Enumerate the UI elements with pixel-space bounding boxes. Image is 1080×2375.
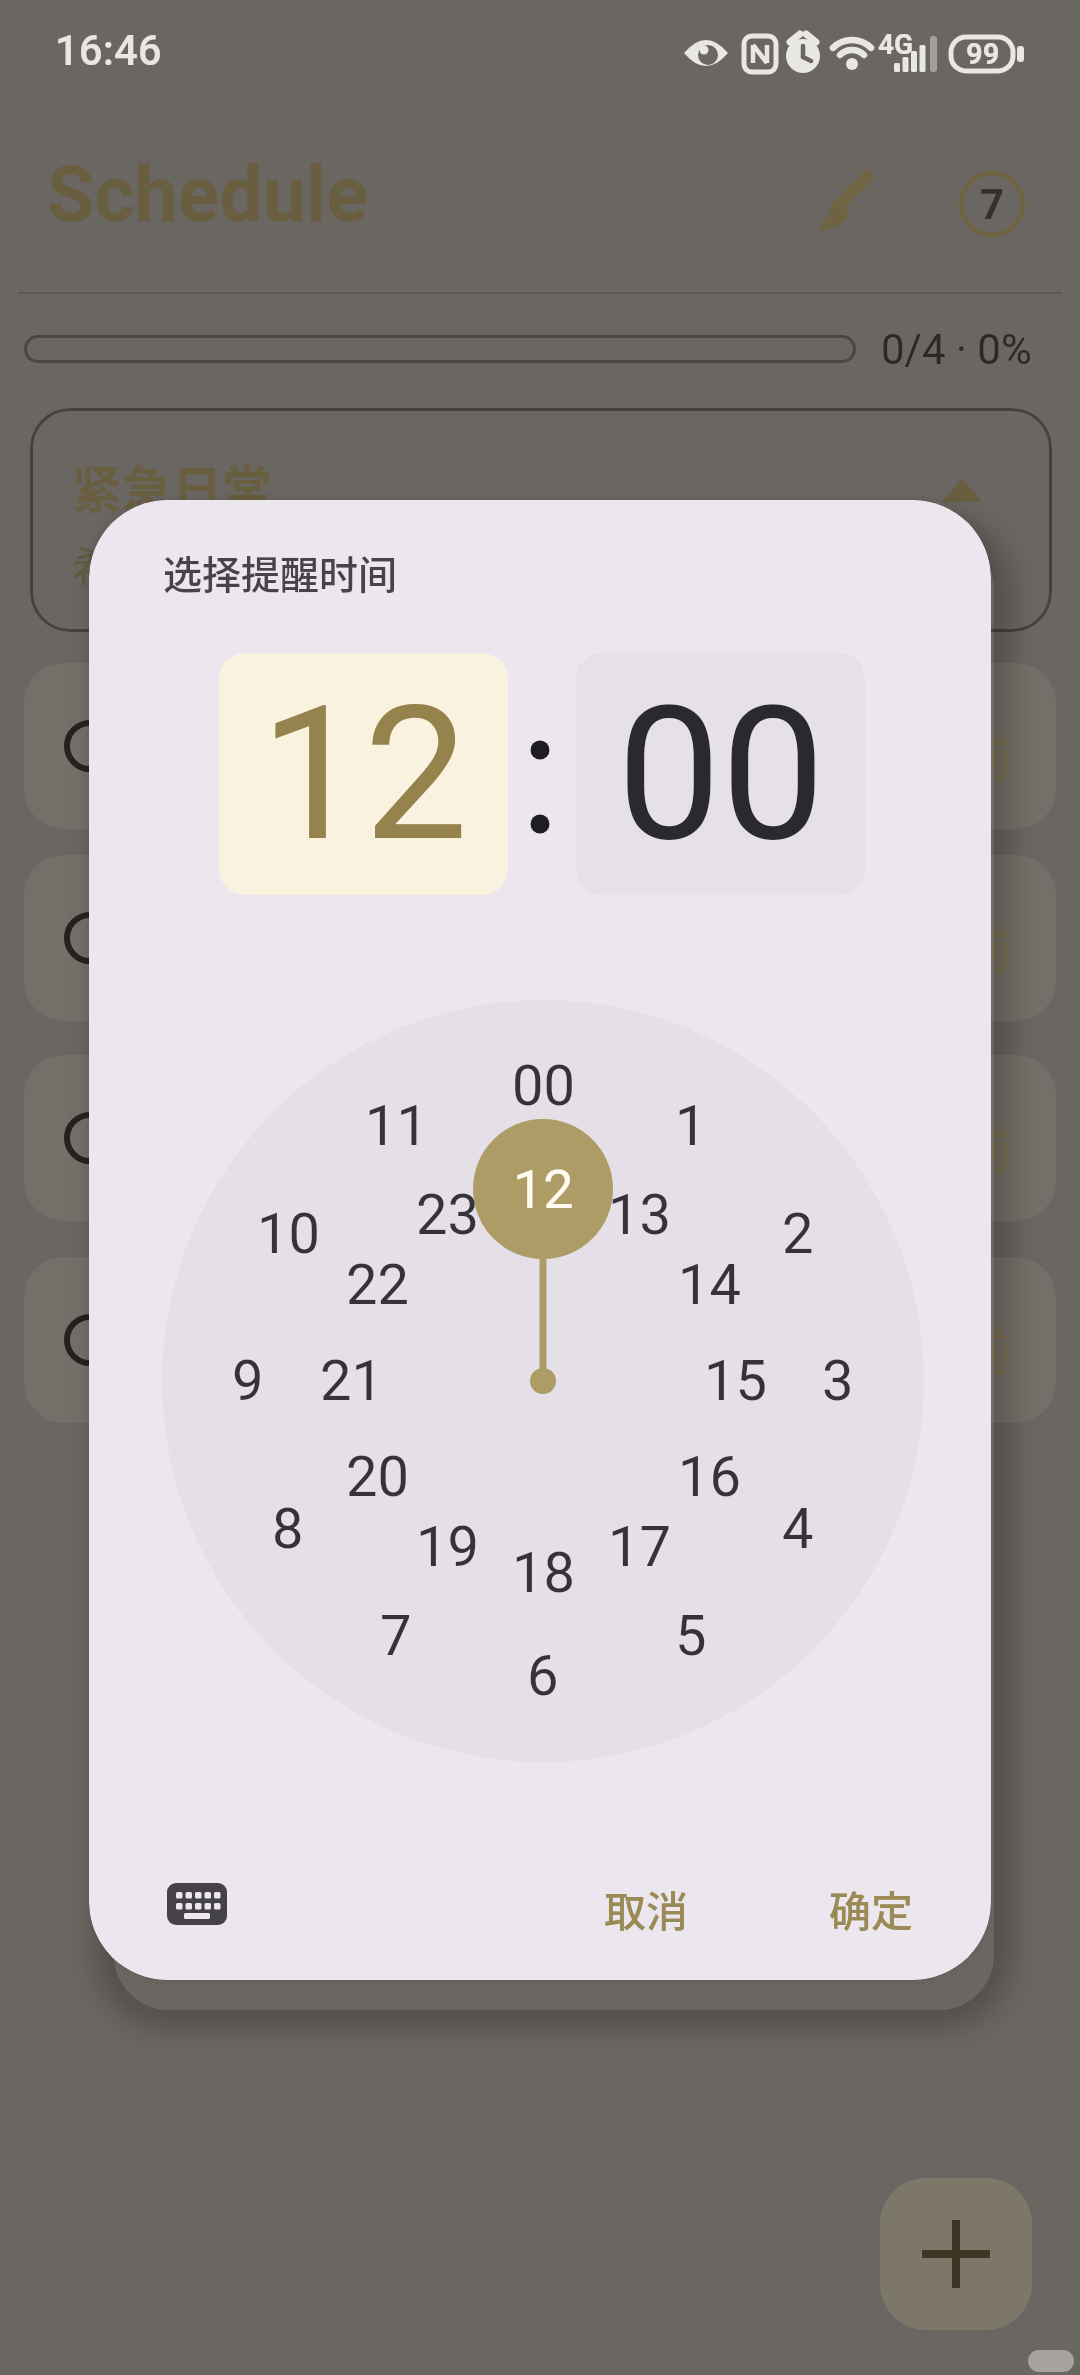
button[interactable]: 4 <box>753 1484 843 1574</box>
staticText: 希望早日实现 <box>72 533 336 597</box>
staticText: 确定 <box>829 1878 914 1939</box>
staticText: 17 <box>608 1514 671 1580</box>
staticText: 紧急日常 <box>72 450 272 522</box>
staticText: 5 <box>675 1603 707 1669</box>
button[interactable]: 取消 <box>576 1868 716 1948</box>
button[interactable]: 前 <box>24 663 1056 829</box>
staticText: 23 <box>416 1182 479 1248</box>
button[interactable]: 紧急日常 <box>30 408 1052 632</box>
button[interactable]: 18 <box>498 1528 588 1618</box>
button[interactable] <box>880 2178 1032 2330</box>
button[interactable]: 00 <box>498 1041 588 1131</box>
button[interactable]: 2 <box>753 1189 843 1279</box>
staticText: 10 <box>257 1201 320 1267</box>
staticText: 11 <box>365 1093 428 1159</box>
staticText: 18 <box>512 1540 575 1606</box>
staticText: 00 <box>512 1053 575 1119</box>
staticText: 12 <box>513 1158 574 1221</box>
button[interactable]: 23 <box>402 1170 492 1260</box>
button[interactable]: 12 <box>473 1119 613 1259</box>
button[interactable]: 13 <box>594 1170 684 1260</box>
button[interactable]: 20 <box>332 1432 422 1522</box>
staticText: 19 <box>416 1514 479 1580</box>
staticText: 4 <box>782 1496 814 1562</box>
button[interactable]: 前 <box>24 855 1056 1021</box>
staticText: 前 <box>962 1110 1012 1182</box>
button[interactable] <box>137 1852 257 1956</box>
staticText: 4G <box>878 28 914 61</box>
staticText: 前 <box>962 910 1012 982</box>
staticText: 6 <box>527 1643 559 1709</box>
button[interactable]: 15 <box>690 1336 780 1426</box>
button[interactable] <box>806 168 878 240</box>
staticText: 1 <box>675 1093 707 1159</box>
staticText: 22 <box>346 1252 409 1318</box>
staticText: 前 <box>962 1312 1012 1384</box>
staticText: 选择提醒时间 <box>163 544 398 600</box>
button[interactable]: 7 <box>958 170 1026 238</box>
staticText: 16:46 <box>55 26 162 75</box>
staticText: 99 <box>966 37 1000 71</box>
staticText: 9 <box>232 1348 264 1414</box>
staticText: 7 <box>980 180 1005 229</box>
staticText: 14 <box>678 1252 741 1318</box>
button[interactable]: 前 <box>24 1055 1056 1221</box>
staticText: 13 <box>608 1182 671 1248</box>
button[interactable]: 前 <box>24 1257 1056 1423</box>
staticText: 8 <box>272 1496 304 1562</box>
button[interactable]: 17 <box>594 1502 684 1592</box>
button[interactable]: 22 <box>332 1240 422 1330</box>
staticText: 21 <box>320 1348 383 1414</box>
staticText: 取消 <box>604 1878 689 1939</box>
button[interactable]: 00 <box>576 653 865 895</box>
staticText: 15 <box>704 1348 767 1414</box>
staticText: 12 <box>260 666 468 883</box>
button[interactable]: 7 <box>351 1591 441 1681</box>
button[interactable]: 1 <box>646 1081 736 1171</box>
button[interactable]: 19 <box>402 1502 492 1592</box>
button[interactable]: 确定 <box>801 1868 941 1948</box>
button[interactable]: 10 <box>243 1189 333 1279</box>
button[interactable]: 16 <box>664 1432 754 1522</box>
button[interactable]: 3 <box>793 1336 883 1426</box>
button[interactable]: 9 <box>203 1336 293 1426</box>
staticText: 前 <box>962 718 1012 790</box>
staticText: 7 <box>380 1603 412 1669</box>
button[interactable]: 12 <box>219 653 508 895</box>
staticText: 3 <box>822 1348 854 1414</box>
staticText: 0/4 · 0% <box>881 325 1032 374</box>
button[interactable]: 21 <box>306 1336 396 1426</box>
button[interactable]: 11 <box>351 1081 441 1171</box>
staticText: 00 <box>617 666 825 883</box>
button[interactable]: 14 <box>664 1240 754 1330</box>
button[interactable]: 6 <box>498 1631 588 1721</box>
button[interactable]: 5 <box>646 1591 736 1681</box>
staticText: Schedule <box>47 150 368 240</box>
button[interactable]: 8 <box>243 1484 333 1574</box>
staticText: 20 <box>346 1444 409 1510</box>
staticText: 16 <box>678 1444 741 1510</box>
staticText: 2 <box>782 1201 814 1267</box>
